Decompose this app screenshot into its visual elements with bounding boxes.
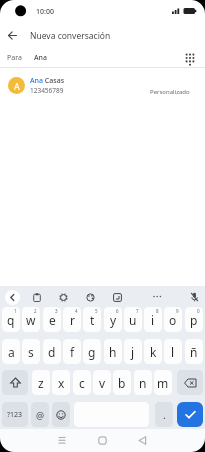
staticText: r (70, 312, 75, 328)
button[interactable] (5, 290, 20, 305)
button[interactable]: u (124, 307, 142, 332)
button[interactable] (98, 436, 107, 445)
button[interactable] (86, 293, 95, 302)
staticText: i (151, 312, 155, 328)
button[interactable]: A (0, 70, 205, 102)
staticText: m (157, 375, 169, 391)
staticText: c (79, 375, 85, 391)
button[interactable] (177, 402, 203, 427)
button[interactable] (33, 293, 41, 302)
staticText: 3 (55, 308, 58, 314)
button[interactable]: e (43, 307, 61, 332)
button[interactable] (2, 370, 28, 395)
staticText: u (129, 312, 137, 328)
button[interactable]: c (73, 370, 91, 395)
button[interactable]: d (43, 339, 61, 364)
staticText: n (139, 375, 147, 391)
button[interactable]: o (164, 307, 182, 332)
staticText: j (131, 344, 135, 360)
button[interactable] (113, 293, 122, 302)
staticText: y (110, 312, 117, 328)
button[interactable]: h (104, 339, 122, 364)
button[interactable] (52, 402, 70, 427)
staticText: Ana (34, 53, 47, 63)
staticText: ?123 (7, 410, 23, 420)
staticText: Personalizado (150, 88, 190, 96)
button[interactable] (152, 292, 163, 301)
button[interactable]: g (83, 339, 101, 364)
staticText: @ (36, 409, 45, 421)
staticText: z (38, 375, 44, 391)
staticText: 8 (156, 308, 159, 314)
button[interactable]: k (144, 339, 162, 364)
button[interactable]: @ (31, 402, 49, 427)
button[interactable]: p (185, 307, 203, 332)
button[interactable]: b (113, 370, 131, 395)
button[interactable]: ñ (185, 339, 203, 364)
button[interactable]: s (22, 339, 40, 364)
staticText: s (28, 344, 34, 360)
button[interactable]: m (154, 370, 172, 395)
staticText: h (109, 344, 117, 360)
staticText: A (14, 80, 20, 92)
staticText: b (118, 375, 126, 391)
button[interactable]: x (52, 370, 70, 395)
staticText: 4 (75, 308, 78, 314)
staticText: q (7, 312, 15, 328)
button[interactable]: j (124, 339, 142, 364)
button[interactable]: y (104, 307, 122, 332)
staticText: 7 (136, 308, 139, 314)
staticText: Nueva conversación (30, 30, 111, 42)
button[interactable]: w (22, 307, 40, 332)
button[interactable] (177, 370, 203, 395)
staticText: o (169, 312, 177, 328)
button[interactable]: z (32, 370, 50, 395)
staticText: ñ (190, 344, 198, 360)
staticText: Ana Casas (30, 76, 65, 86)
button[interactable]: r (63, 307, 81, 332)
button[interactable]: v (93, 370, 111, 395)
staticText: k (150, 344, 157, 360)
staticText: 9 (176, 308, 179, 314)
staticText: f (70, 344, 75, 360)
staticText: 1 (14, 308, 17, 314)
button[interactable]: t (83, 307, 101, 332)
staticText: Para (7, 53, 22, 63)
staticText: 6 (116, 308, 119, 314)
staticText: 123456789 (30, 86, 64, 95)
staticText: x (58, 375, 65, 391)
staticText: v (99, 375, 106, 391)
button[interactable] (5, 28, 19, 42)
button[interactable] (57, 436, 67, 445)
staticText: e (49, 312, 56, 328)
staticText: . (163, 408, 166, 422)
button[interactable]: f (63, 339, 81, 364)
staticText: 2 (34, 308, 37, 314)
button[interactable]: q (2, 307, 20, 332)
staticText: d (48, 344, 56, 360)
staticText: w (26, 312, 36, 328)
staticText: t (90, 312, 95, 328)
button[interactable]: Para (0, 48, 205, 67)
button[interactable]: ?123 (2, 402, 28, 427)
button[interactable]: i (144, 307, 162, 332)
staticText: l (171, 344, 175, 360)
staticText: p (190, 312, 198, 328)
staticText: 5 (95, 308, 98, 314)
button[interactable] (138, 436, 147, 445)
staticText: a (8, 344, 15, 360)
button[interactable]: . (155, 402, 173, 427)
button[interactable] (59, 293, 68, 302)
staticText: 10:00 (36, 7, 54, 17)
button[interactable]: l (164, 339, 182, 364)
staticText: g (88, 344, 96, 360)
button[interactable]: a (2, 339, 20, 364)
button[interactable] (190, 292, 199, 302)
button[interactable]: n (134, 370, 152, 395)
staticText: 0 (197, 308, 200, 314)
